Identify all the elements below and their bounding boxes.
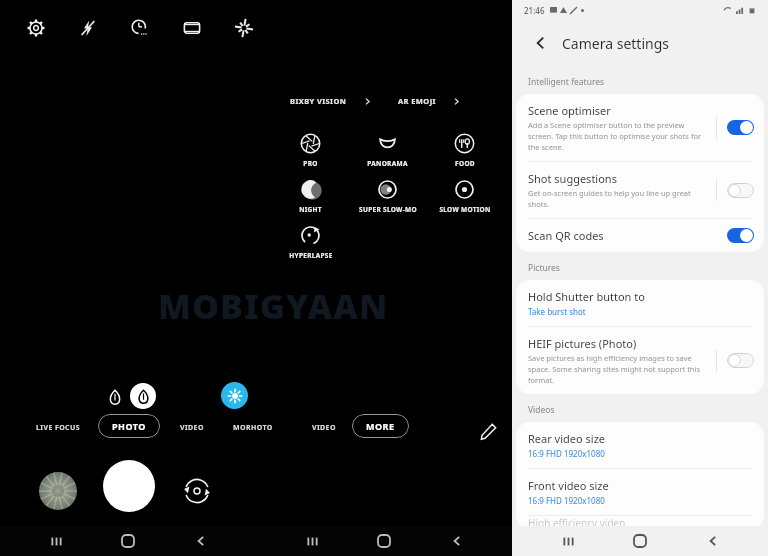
staticText: PANORAMA — [367, 159, 408, 168]
button[interactable]: SLOW MOTION — [426, 176, 503, 216]
button[interactable]: PRO — [272, 130, 349, 170]
button[interactable]: Beauty off — [103, 385, 127, 409]
button[interactable]: Rear video size — [516, 422, 764, 468]
button[interactable]: Flash off — [62, 2, 114, 54]
button[interactable]: On — [727, 228, 754, 243]
staticText: NIGHT — [299, 205, 322, 214]
staticText: HYPERLAPSE — [289, 251, 333, 260]
staticText: PRO — [303, 159, 318, 168]
staticText: High efficiency video — [528, 516, 626, 529]
staticText: LIVE FOCUS — [36, 423, 80, 433]
staticText: Take burst shot — [528, 306, 586, 317]
button[interactable]: Settings — [10, 2, 62, 54]
button[interactable]: Home — [111, 526, 145, 556]
button[interactable]: Scene optimiser — [221, 382, 248, 409]
button[interactable]: FOOD — [426, 130, 503, 170]
button[interactable]: Aspect ratio 3 to 4 — [166, 2, 218, 54]
button[interactable]: Recents — [39, 526, 73, 556]
button[interactable]: Home — [367, 526, 401, 556]
button[interactable]: Front video size — [516, 469, 764, 515]
staticText: FOOD — [455, 159, 475, 168]
staticText: Save pictures as high efficiency images … — [528, 353, 708, 385]
button[interactable]: Hold Shutter button to — [516, 280, 764, 326]
button[interactable]: HYPERLAPSE — [272, 222, 349, 262]
staticText: Front video size — [528, 478, 609, 493]
button[interactable]: HEIF pictures (Photo) — [516, 327, 764, 394]
staticText: MOBIGYAAN — [158, 283, 389, 329]
button[interactable]: Timer off — [114, 2, 166, 54]
button[interactable]: VIDEO — [308, 420, 340, 436]
button[interactable]: PHOTO — [98, 414, 160, 438]
button[interactable]: Beauty on — [130, 383, 156, 409]
staticText: PHOTO — [112, 420, 146, 432]
staticText: Camera settings — [562, 34, 669, 53]
staticText: SLOW MOTION — [439, 205, 491, 214]
staticText: Rear video size — [528, 431, 606, 446]
staticText: Intelligent features — [528, 76, 605, 88]
button[interactable]: VIDEO — [176, 420, 208, 436]
button[interactable]: MORE — [352, 414, 409, 438]
button[interactable]: PANORAMA — [349, 130, 426, 170]
button[interactable]: Back — [440, 526, 474, 556]
button[interactable]: LIVE FOCUS — [32, 420, 84, 436]
button[interactable]: AR EMOJI — [396, 92, 463, 110]
button[interactable]: Recents — [295, 526, 329, 556]
button[interactable]: Scan QR codes — [516, 219, 764, 252]
button[interactable]: SUPER SLOW-MO — [349, 176, 426, 216]
button[interactable]: Recents — [551, 526, 585, 556]
staticText: Hold Shutter button to — [528, 289, 645, 304]
button[interactable]: Scene optimiser — [516, 94, 764, 161]
staticText: VIDEO — [312, 423, 336, 433]
staticText: HEIF pictures (Photo) — [528, 336, 637, 351]
button[interactable]: BIXBY VISION — [288, 92, 374, 110]
staticText: Videos — [528, 404, 555, 416]
staticText: 16:9 FHD 1920x1080 — [528, 495, 605, 506]
button[interactable]: Edit modes — [476, 419, 500, 443]
staticText: Get on-screen guides to help you line up… — [528, 188, 708, 209]
staticText: Shot suggestions — [528, 171, 617, 186]
button[interactable]: Shutter — [103, 460, 155, 512]
staticText: Scene optimiser — [528, 103, 611, 118]
button[interactable]: Effects — [218, 2, 270, 54]
staticText: Add a Scene optimiser button to the prev… — [528, 120, 708, 152]
button[interactable]: Off — [727, 183, 754, 198]
button[interactable]: On — [727, 120, 754, 135]
staticText: BIXBY VISION — [290, 96, 347, 106]
staticText: AR EMOJI — [398, 96, 436, 106]
button[interactable]: Back — [696, 526, 730, 556]
button[interactable]: Switch camera — [179, 473, 215, 509]
staticText: VIDEO — [180, 423, 204, 433]
staticText: SUPER SLOW-MO — [359, 205, 417, 214]
staticText: Pictures — [528, 262, 560, 274]
button[interactable]: Gallery — [39, 472, 77, 510]
staticText: MORE — [366, 420, 395, 432]
staticText: MORHOTO — [233, 423, 273, 433]
button[interactable]: MORHOTO — [229, 420, 277, 436]
button[interactable]: Off — [727, 353, 754, 368]
button[interactable]: Shot suggestions — [516, 162, 764, 218]
staticText: Scan QR codes — [528, 228, 604, 243]
staticText: 21:46 — [524, 5, 545, 16]
button[interactable]: Back — [184, 526, 218, 556]
button[interactable]: Back — [526, 28, 556, 58]
staticText: 16:9 FHD 1920x1080 — [528, 448, 605, 459]
button[interactable]: NIGHT — [272, 176, 349, 216]
button[interactable]: Home — [623, 526, 657, 556]
